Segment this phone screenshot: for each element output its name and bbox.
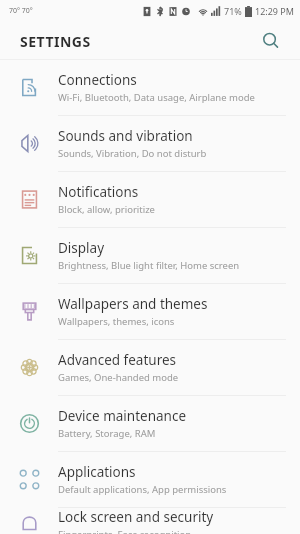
staticText: Connections <box>58 71 137 89</box>
staticText: Sounds and vibration <box>58 127 193 145</box>
staticText: SETTINGS <box>20 32 91 51</box>
staticText: Wallpapers, themes, icons <box>58 315 175 328</box>
staticText: Device maintenance <box>58 407 187 425</box>
button[interactable]: Sounds and vibration <box>0 116 300 171</box>
staticText: Notifications <box>58 183 139 201</box>
staticText: Sounds, Vibration, Do not disturb <box>58 147 207 160</box>
button[interactable]: Wallpapers and themes <box>0 284 300 339</box>
button[interactable]: Connections <box>0 60 300 115</box>
staticText: 71% <box>224 5 242 17</box>
staticText: Lock screen and security <box>58 508 214 526</box>
staticText: 12:29 PM <box>255 5 294 17</box>
staticText: Block, allow, prioritize <box>58 203 155 216</box>
button[interactable]: Advanced features <box>0 340 300 395</box>
button[interactable]: Display <box>0 228 300 283</box>
button[interactable]: Applications <box>0 452 300 507</box>
staticText: Games, One-handed mode <box>58 371 179 384</box>
staticText: Wallpapers and themes <box>58 295 208 313</box>
button[interactable]: Search <box>256 26 286 56</box>
staticText: Advanced features <box>58 351 177 369</box>
staticText: Battery, Storage, RAM <box>58 427 156 440</box>
button[interactable]: Device maintenance <box>0 396 300 451</box>
staticText: 70° 70° <box>9 6 33 16</box>
staticText: Applications <box>58 463 136 481</box>
staticText: Display <box>58 239 105 257</box>
button[interactable]: Notifications <box>0 172 300 227</box>
staticText: Brightness, Blue light filter, Home scre… <box>58 259 240 272</box>
staticText: Default applications, App permissions <box>58 483 227 496</box>
staticText: Wi-Fi, Bluetooth, Data usage, Airplane m… <box>58 91 255 104</box>
staticText: Fingerprints, Face recognition <box>58 528 192 534</box>
button[interactable]: Lock screen and security <box>0 508 300 534</box>
